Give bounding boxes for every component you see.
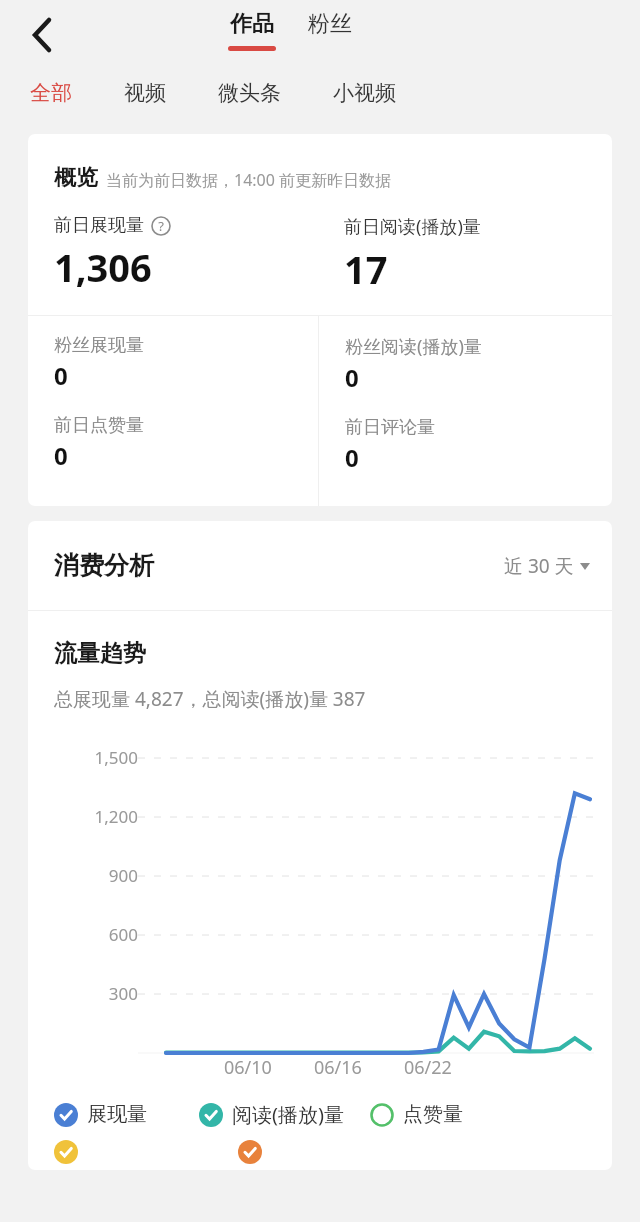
staticText: 1,200 <box>28 805 138 828</box>
staticText: 粉丝阅读(播放)量 <box>345 334 482 359</box>
staticText: 消费分析 <box>54 550 154 581</box>
staticText: 微头条 <box>218 80 281 106</box>
staticText: ? <box>158 217 164 235</box>
button[interactable] <box>54 1140 78 1164</box>
staticText: 900 <box>28 864 138 887</box>
staticText: 流量趋势 <box>54 639 146 668</box>
staticText: 06/16 <box>314 1055 362 1080</box>
staticText: 小视频 <box>333 80 396 106</box>
button[interactable]: 粉丝 <box>308 0 352 38</box>
staticText: 0 <box>54 439 68 472</box>
staticText: 0 <box>345 441 359 474</box>
staticText: 阅读(播放)量 <box>232 1101 344 1128</box>
staticText: 近 30 天 <box>504 553 574 579</box>
button[interactable]: 全部 <box>30 80 72 106</box>
staticText: 当前为前日数据，14:00 前更新昨日数据 <box>106 169 392 191</box>
staticText: 视频 <box>124 80 166 106</box>
staticText: 17 <box>344 243 388 295</box>
button[interactable]: 近 30 天 <box>504 553 590 579</box>
staticText: 前日展现量 <box>54 214 144 237</box>
button[interactable]: 小视频 <box>333 80 396 106</box>
button[interactable]: 点赞量 <box>370 1102 463 1127</box>
button[interactable]: Help <box>151 216 171 236</box>
button[interactable]: 视频 <box>124 80 166 106</box>
staticText: 0 <box>345 361 359 394</box>
staticText: 600 <box>28 923 138 946</box>
staticText: 1,500 <box>28 746 138 769</box>
staticText: 总展现量 4,827，总阅读(播放)量 387 <box>54 686 366 712</box>
staticText: 300 <box>28 982 138 1005</box>
staticText: 前日评论量 <box>345 416 435 439</box>
staticText: 作品 <box>230 10 274 38</box>
staticText: 概览 <box>54 164 98 192</box>
staticText: 前日阅读(播放)量 <box>344 214 481 239</box>
button[interactable]: 作品 <box>228 0 276 51</box>
staticText: 1,306 <box>54 241 152 293</box>
staticText: 展现量 <box>87 1102 147 1127</box>
button[interactable]: Back <box>14 7 70 63</box>
button[interactable]: 微头条 <box>218 80 281 106</box>
staticText: 前日点赞量 <box>54 414 144 437</box>
staticText: 粉丝展现量 <box>54 334 144 357</box>
staticText: 06/10 <box>224 1055 272 1080</box>
button[interactable]: 展现量 <box>54 1102 147 1127</box>
staticText: 全部 <box>30 80 72 106</box>
staticText: 0 <box>54 359 68 392</box>
button[interactable] <box>238 1140 262 1164</box>
staticText: 06/22 <box>404 1055 452 1080</box>
staticText: 粉丝 <box>308 10 352 38</box>
staticText: 点赞量 <box>403 1102 463 1127</box>
button[interactable]: 阅读(播放)量 <box>199 1101 344 1128</box>
